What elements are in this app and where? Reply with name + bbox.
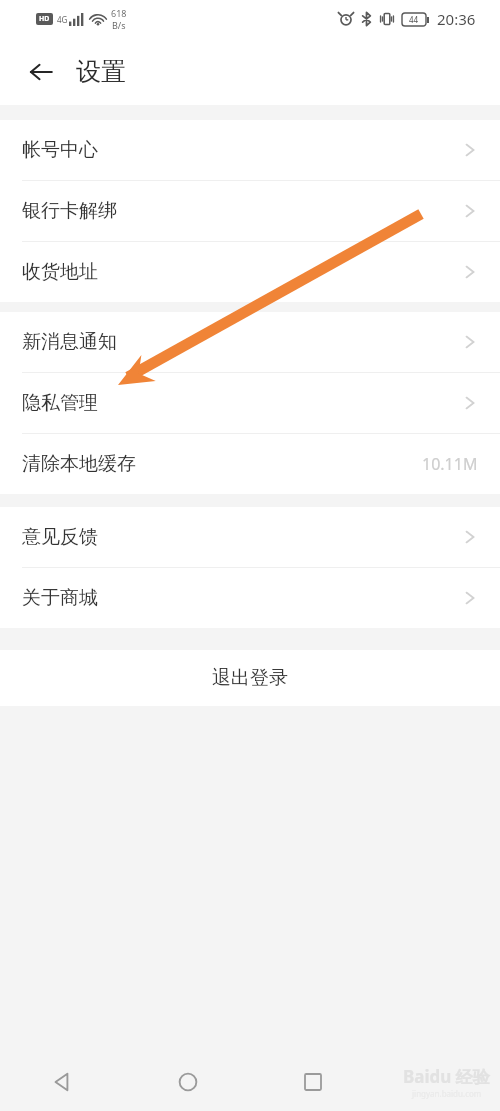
button[interactable]: Back: [18, 49, 64, 95]
staticText: HD: [39, 14, 50, 24]
staticText: 20:36: [437, 9, 476, 29]
staticText: 44: [409, 14, 419, 25]
button[interactable]: 银行卡解绑: [0, 181, 500, 241]
staticText: jingyan.baidu.com: [412, 1088, 482, 1099]
staticText: 618: [111, 7, 127, 19]
staticText: 帐号中心: [22, 138, 98, 162]
staticText: 隐私管理: [22, 391, 98, 415]
button[interactable]: 意见反馈: [0, 507, 500, 567]
button[interactable]: 帐号中心: [0, 120, 500, 180]
staticText: 新消息通知: [22, 330, 117, 354]
button[interactable]: 退出登录: [0, 650, 500, 706]
button[interactable]: 新消息通知: [0, 312, 500, 372]
button[interactable]: Home: [125, 1052, 250, 1111]
staticText: 设置: [76, 56, 126, 87]
button[interactable]: 关于商城: [0, 568, 500, 628]
staticText: 银行卡解绑: [22, 199, 117, 223]
staticText: 清除本地缓存: [22, 452, 136, 476]
staticText: 退出登录: [212, 666, 288, 690]
button[interactable]: 隐私管理: [0, 373, 500, 433]
button[interactable]: 收货地址: [0, 242, 500, 302]
staticText: 4G: [57, 14, 68, 25]
staticText: Baidu 经验: [403, 1065, 490, 1088]
staticText: 收货地址: [22, 260, 98, 284]
button[interactable]: Back: [0, 1052, 125, 1111]
button[interactable]: Recents: [250, 1052, 375, 1111]
button[interactable]: 清除本地缓存: [0, 434, 500, 494]
staticText: 关于商城: [22, 586, 98, 610]
staticText: 10.11M: [422, 453, 478, 475]
staticText: 意见反馈: [22, 525, 98, 549]
staticText: B/s: [112, 19, 126, 31]
